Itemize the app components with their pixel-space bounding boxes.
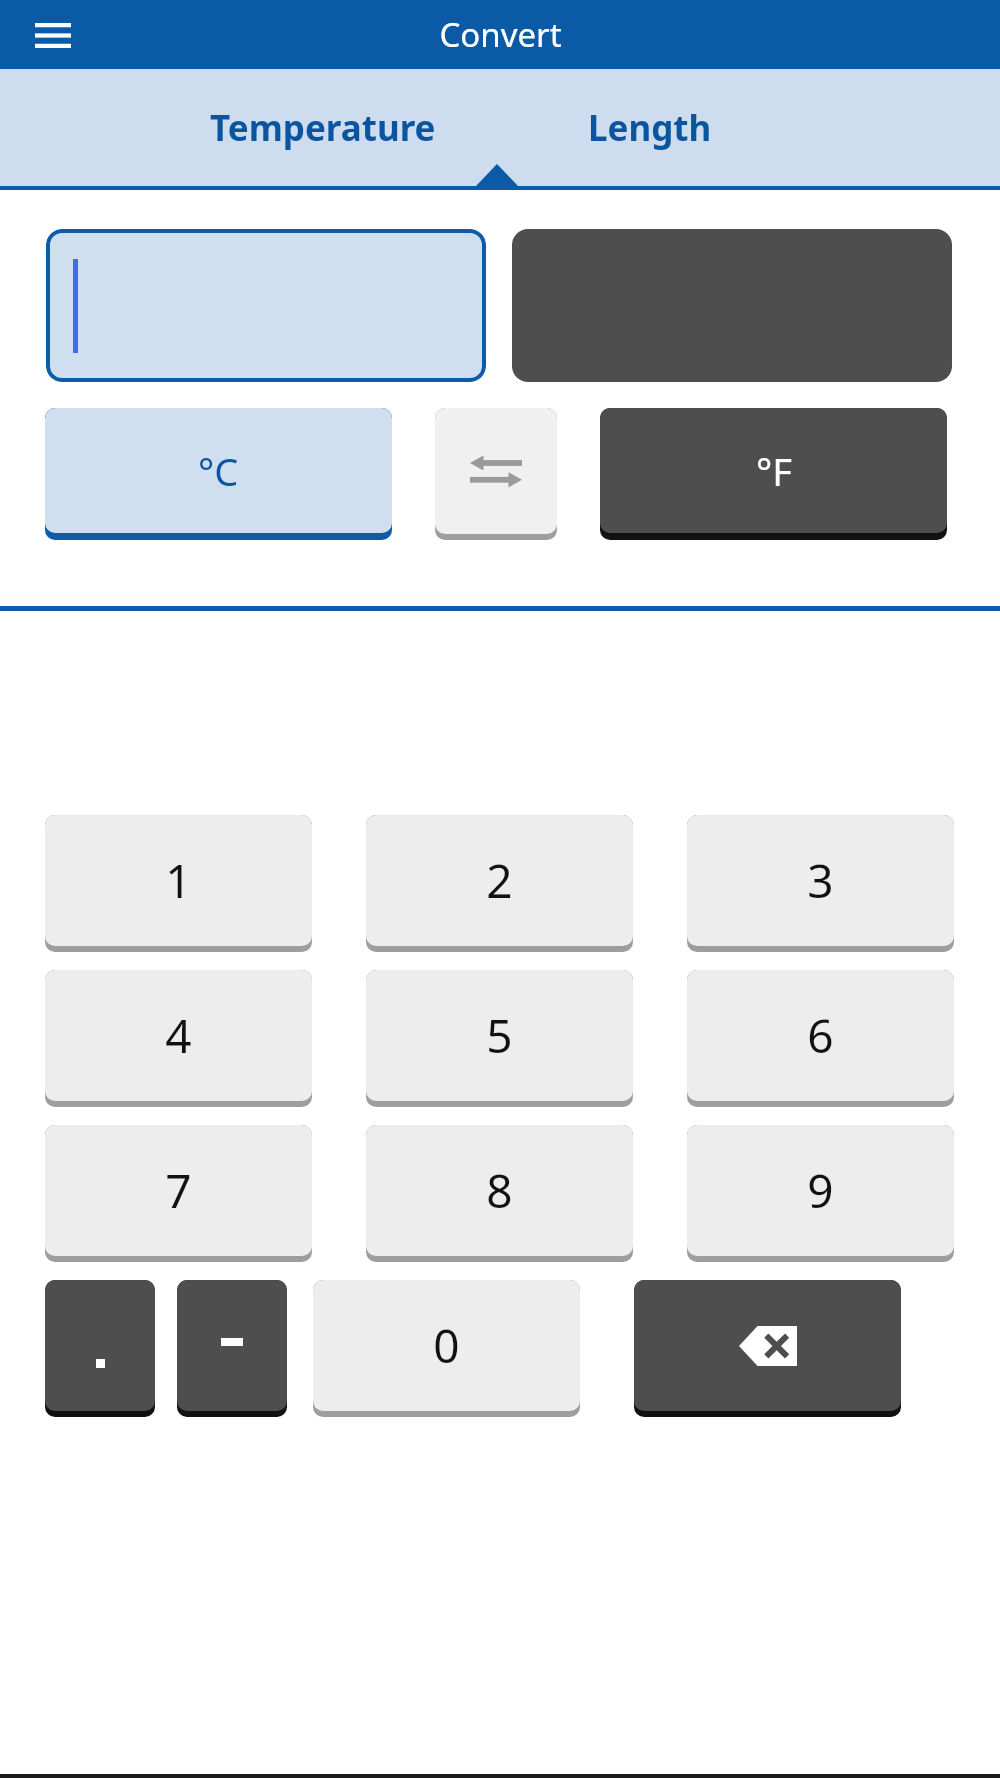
staticText: 1 — [165, 849, 192, 912]
staticText: °F — [756, 445, 792, 497]
staticText: 4 — [165, 1004, 192, 1067]
staticText: 5 — [486, 1004, 513, 1067]
button[interactable]: Menu — [22, 6, 84, 64]
staticText: Convert — [439, 12, 562, 57]
staticText: 3 — [807, 849, 834, 912]
button[interactable]: Backspace — [634, 1280, 901, 1417]
button[interactable]: 8 — [366, 1125, 633, 1262]
staticText: Length — [588, 104, 712, 152]
staticText: Temperature — [210, 104, 436, 152]
button[interactable]: 4 — [45, 970, 312, 1107]
button[interactable]: 7 — [45, 1125, 312, 1262]
staticText: 7 — [165, 1159, 192, 1222]
button[interactable]: 9 — [687, 1125, 954, 1262]
button[interactable]: °C — [45, 408, 392, 540]
staticText: 8 — [486, 1159, 513, 1222]
button[interactable] — [512, 229, 952, 382]
button[interactable]: °F — [600, 408, 947, 540]
button[interactable] — [46, 229, 486, 382]
staticText: 0 — [433, 1314, 460, 1377]
button[interactable] — [177, 1280, 287, 1417]
button[interactable] — [45, 1280, 155, 1417]
button[interactable]: Swap units — [435, 408, 557, 540]
button[interactable]: 5 — [366, 970, 633, 1107]
button[interactable]: Temperature — [150, 69, 495, 186]
button[interactable]: 0 — [313, 1280, 580, 1417]
staticText: 2 — [486, 849, 513, 912]
button[interactable]: 6 — [687, 970, 954, 1107]
button[interactable]: 2 — [366, 815, 633, 952]
staticText: 9 — [807, 1159, 834, 1222]
staticText: 6 — [807, 1004, 834, 1067]
button[interactable]: Length — [495, 69, 805, 186]
staticText: °C — [198, 445, 239, 497]
button[interactable]: 1 — [45, 815, 312, 952]
button[interactable]: 3 — [687, 815, 954, 952]
